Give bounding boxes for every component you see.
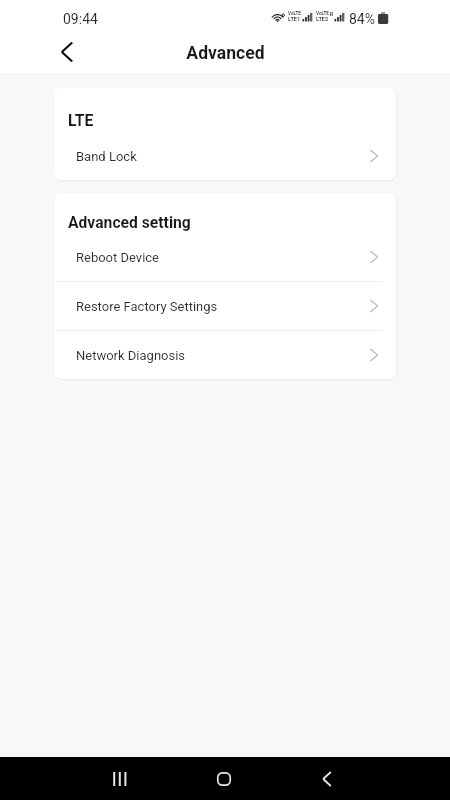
staticText: 84% [349,11,375,27]
button[interactable]: Network Diagnosis [54,330,396,379]
staticText: Reboot Device [76,250,160,265]
staticText: VoLTE [316,11,329,16]
staticText: VoLTE [288,11,301,16]
staticText: Network Diagnosis [76,348,186,363]
staticText: Advanced setting [68,213,191,231]
button[interactable]: Reboot Device [54,232,396,281]
staticText: Band Lock [76,149,137,164]
button[interactable]: Back [46,32,88,72]
staticText: Restore Factory Settings [76,299,218,314]
button[interactable]: Restore Factory Settings [54,281,396,330]
staticText: LTE1 [288,16,301,23]
staticText: R [330,11,334,17]
staticText: Advanced [186,43,265,64]
staticText: 09:44 [63,11,98,27]
staticText: LTE2 [316,16,329,23]
button[interactable]: Home [202,757,246,800]
button[interactable]: Band Lock [54,131,396,180]
button[interactable]: Back [305,757,349,800]
staticText: LTE [68,111,94,129]
button[interactable]: Recent apps [98,757,142,800]
